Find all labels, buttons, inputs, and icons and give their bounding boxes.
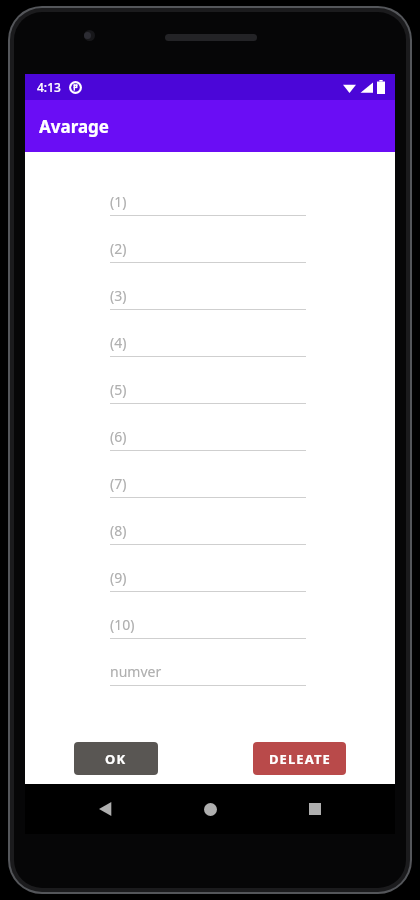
button[interactable]: (4) — [110, 333, 306, 357]
staticText: Avarage — [39, 115, 109, 138]
staticText: (2) — [110, 239, 127, 258]
button[interactable]: (2) — [110, 239, 306, 263]
button[interactable]: numver — [110, 662, 306, 686]
button[interactable]: Recent apps — [291, 785, 339, 833]
staticText: (6) — [110, 427, 127, 446]
staticText: (3) — [110, 286, 127, 305]
button[interactable]: (10) — [110, 615, 306, 639]
staticText: OK — [105, 750, 127, 768]
staticText: (9) — [110, 568, 127, 587]
button[interactable]: (1) — [110, 192, 306, 216]
staticText: (7) — [110, 474, 127, 493]
button[interactable]: OK — [74, 742, 158, 775]
button[interactable]: Home — [186, 785, 234, 833]
button[interactable]: (6) — [110, 427, 306, 451]
button[interactable]: (8) — [110, 521, 306, 545]
staticText: average — [25, 780, 395, 817]
staticText: (8) — [110, 521, 127, 540]
staticText: (10) — [110, 615, 135, 634]
button[interactable]: (7) — [110, 474, 306, 498]
button[interactable]: DELEATE — [253, 742, 346, 775]
staticText: (5) — [110, 380, 127, 399]
staticText: 4:13 — [37, 79, 61, 95]
staticText: numver — [110, 662, 162, 681]
staticText: DELEATE — [269, 750, 331, 768]
staticText: (1) — [110, 192, 127, 211]
button[interactable]: Back — [82, 785, 130, 833]
staticText: (4) — [110, 333, 127, 352]
button[interactable]: (5) — [110, 380, 306, 404]
button[interactable]: (3) — [110, 286, 306, 310]
button[interactable]: (9) — [110, 568, 306, 592]
